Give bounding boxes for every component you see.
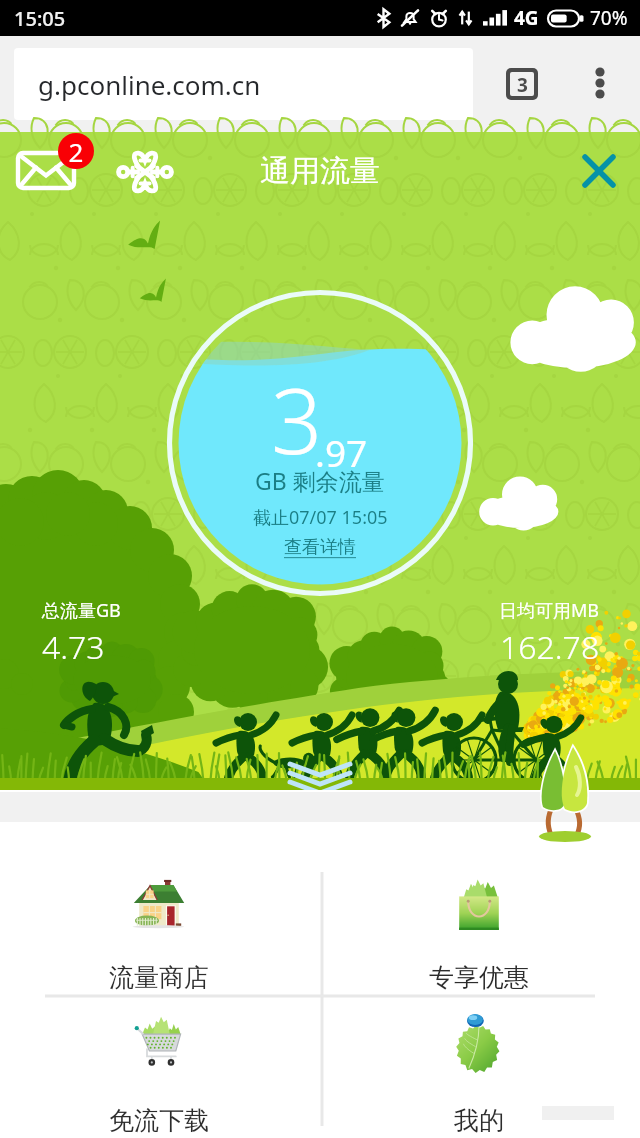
staticText: .97 [315, 427, 368, 477]
staticText: 流量商店 [109, 962, 209, 993]
staticText: 2 [58, 134, 94, 169]
staticText: 通用流量 [260, 152, 380, 190]
button[interactable]: More options [571, 54, 629, 112]
button[interactable]: 免流下载 [0, 982, 319, 1138]
button[interactable]: Messages [4, 138, 104, 200]
staticText: 4G [514, 5, 539, 31]
button[interactable]: Brand [105, 143, 185, 201]
staticText: 3 [517, 72, 528, 96]
staticText: 免流下载 [109, 1105, 209, 1136]
staticText: 日均可用MB [499, 598, 600, 623]
button[interactable]: 专享优惠 [319, 846, 639, 1002]
button[interactable]: 我的 [319, 982, 639, 1138]
staticText: 我的 [454, 1105, 504, 1136]
staticText: g.pconline.com.cn [38, 67, 261, 102]
staticText: 总流量GB [42, 598, 121, 623]
button[interactable]: g.pconline.com.cn [14, 48, 473, 120]
staticText: 15:05 [14, 5, 66, 32]
staticText: 截止07/07 15:05 [253, 505, 388, 530]
staticText: 4.73 [42, 625, 105, 669]
button[interactable]: 流量商店 [0, 846, 319, 1002]
staticText: 3 [271, 358, 323, 481]
staticText: 查看详情 [284, 536, 356, 559]
staticText: GB 剩余流量 [255, 465, 385, 496]
button[interactable]: Close [570, 142, 628, 200]
staticText: 70% [590, 5, 628, 31]
button[interactable]: Tabs [492, 54, 552, 114]
staticText: 专享优惠 [429, 962, 529, 993]
button[interactable]: 查看详情 [284, 536, 356, 559]
staticText: 162.78 [500, 625, 600, 669]
